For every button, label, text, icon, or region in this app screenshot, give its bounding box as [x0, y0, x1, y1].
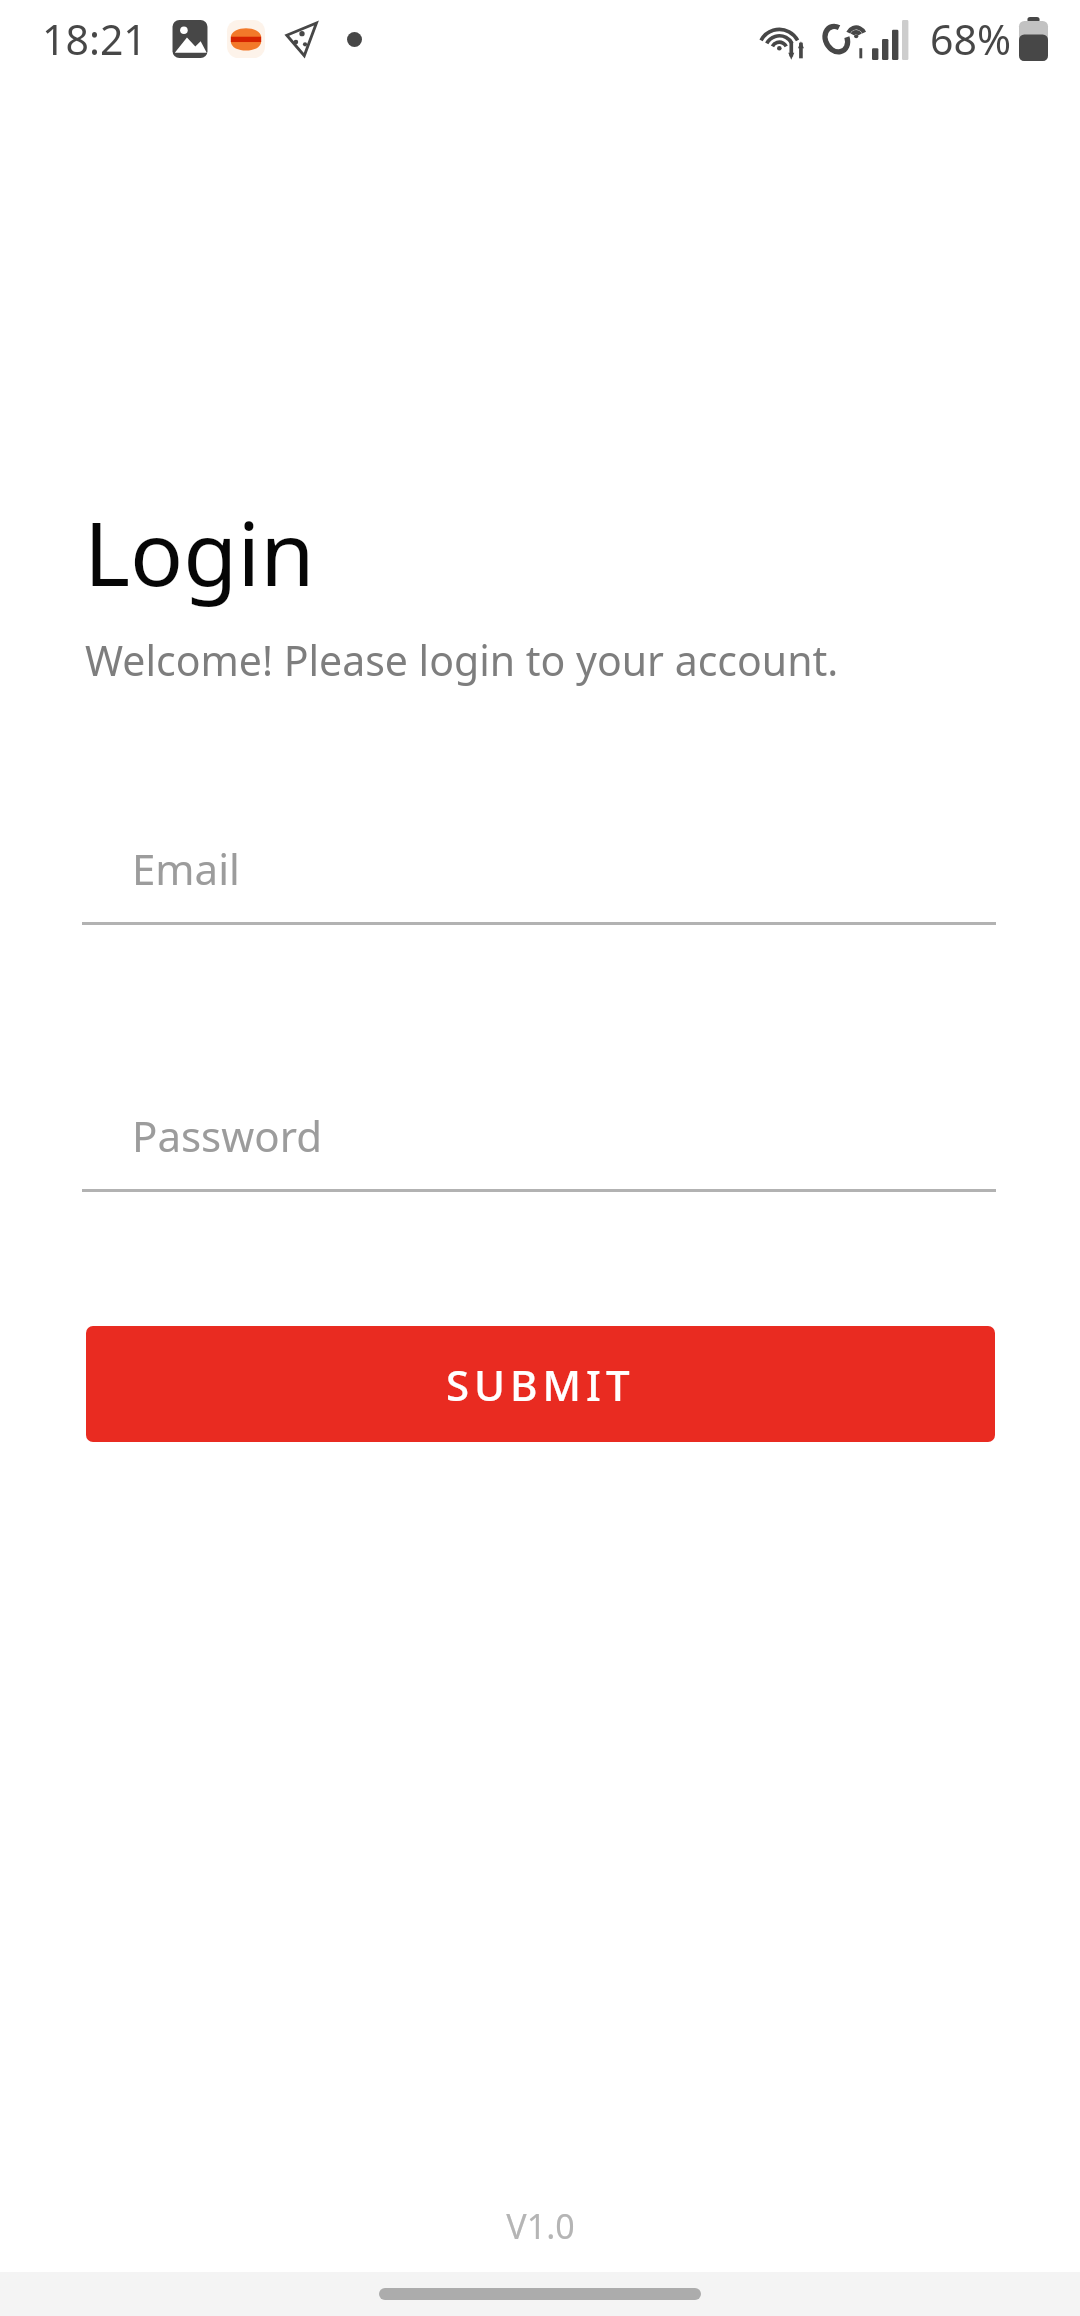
other: Pizza — [283, 20, 321, 58]
staticText: Password — [132, 1107, 322, 1164]
staticText: SUBMIT — [446, 1356, 635, 1413]
staticText: Login — [84, 492, 315, 612]
other: Wi-Fi calling — [824, 16, 870, 62]
other: Burger King — [227, 20, 265, 58]
staticText: V1.0 — [506, 2203, 575, 2249]
button[interactable]: Password — [82, 1082, 996, 1192]
other: Signal — [872, 18, 912, 60]
staticText: Welcome! Please login to your account. — [85, 632, 839, 688]
staticText: 18:21 — [42, 11, 147, 67]
staticText: 68% — [930, 11, 1011, 67]
other: Wi-Fi — [760, 16, 806, 62]
button[interactable]: Email — [82, 815, 996, 925]
button[interactable]: SUBMIT — [86, 1326, 995, 1442]
staticText: Email — [132, 840, 240, 897]
other: Battery 68% — [1019, 17, 1048, 61]
other: Screenshot — [171, 20, 209, 58]
